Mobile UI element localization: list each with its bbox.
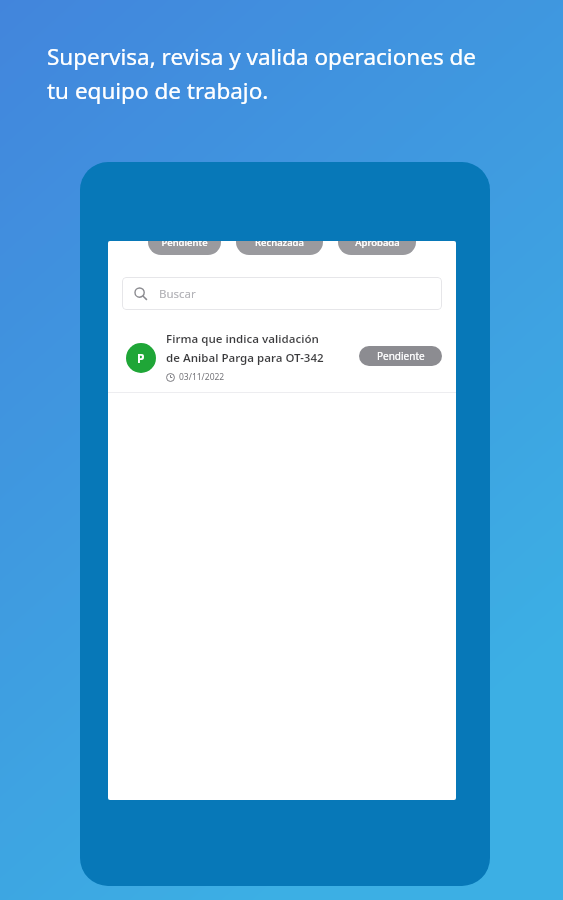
- staticText: Rechazada: [255, 241, 304, 249]
- button[interactable]: Pendiente: [359, 346, 442, 366]
- staticText: tu equipo de trabajo.: [47, 75, 269, 106]
- staticText: Pendiente: [377, 349, 425, 363]
- button[interactable]: Rechazada: [236, 241, 323, 255]
- button[interactable]: Pendiente: [148, 241, 221, 255]
- button[interactable]: Buscar: [122, 277, 442, 310]
- staticText: Buscar: [159, 286, 196, 302]
- staticText: Firma que indica validación: [166, 331, 319, 347]
- staticText: Supervisa, revisa y valida operaciones d…: [47, 41, 477, 72]
- staticText: P: [137, 350, 145, 366]
- other: Buscar: [134, 287, 148, 301]
- button[interactable]: P: [108, 322, 456, 392]
- button[interactable]: Aprobada: [338, 241, 416, 255]
- staticText: Aprobada: [355, 241, 400, 249]
- staticText: 03/11/2022: [179, 371, 225, 383]
- staticText: Pendiente: [161, 241, 208, 249]
- staticText: de Anibal Parga para OT-342: [166, 350, 324, 366]
